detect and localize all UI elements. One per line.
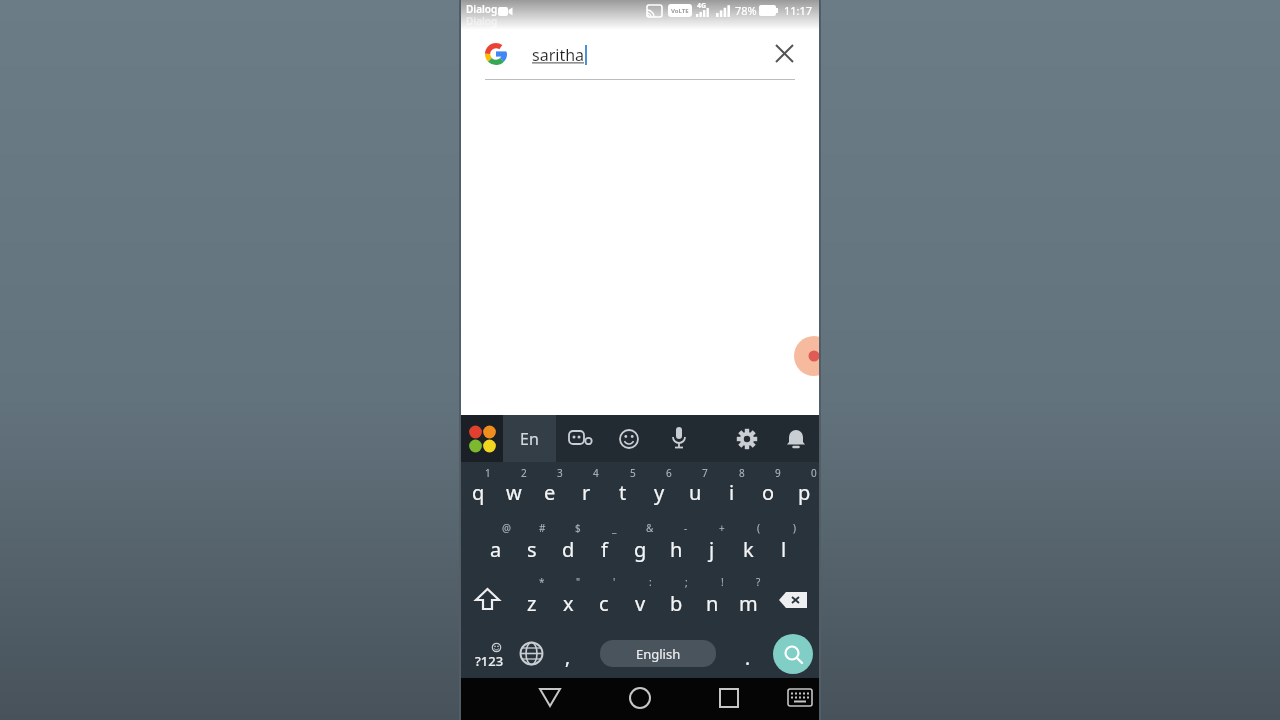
button[interactable]: l [766, 533, 802, 565]
button[interactable]: d [550, 533, 586, 565]
button[interactable]: - [668, 512, 704, 544]
staticText: f [601, 536, 608, 563]
button[interactable]: ( [740, 512, 776, 544]
button[interactable] [788, 689, 812, 706]
button[interactable]: b [658, 587, 694, 619]
button[interactable]: + [704, 512, 740, 544]
staticText: v [635, 590, 646, 617]
button[interactable]: x [550, 587, 586, 619]
button[interactable]: $ [560, 512, 596, 544]
button[interactable]: , [550, 641, 586, 673]
button[interactable]: 4 [578, 457, 614, 489]
staticText: s [527, 536, 537, 563]
staticText: j [709, 536, 715, 563]
button[interactable]: ? [740, 566, 776, 598]
button[interactable]: e [532, 476, 568, 508]
button[interactable]: q [461, 476, 496, 508]
button[interactable] [519, 641, 544, 666]
button[interactable]: r [568, 476, 604, 508]
button[interactable]: ) [776, 512, 812, 544]
button[interactable]: h [658, 533, 694, 565]
button[interactable] [671, 427, 687, 450]
staticText: 3 [557, 466, 563, 480]
staticText: 4 [593, 466, 599, 480]
staticText: 2 [521, 466, 527, 480]
staticText: 4G [697, 1, 707, 11]
button[interactable]: m [730, 587, 766, 619]
button[interactable]: s [514, 533, 550, 565]
button[interactable]: # [524, 512, 560, 544]
button[interactable] [786, 428, 806, 450]
button[interactable] [736, 428, 758, 450]
button[interactable] [629, 687, 651, 709]
staticText: b [670, 590, 683, 617]
button[interactable]: o [750, 476, 786, 508]
button[interactable]: 1 [470, 457, 506, 489]
button[interactable]: : [632, 566, 668, 598]
staticText: m [739, 590, 758, 617]
staticText: 78% [735, 3, 757, 18]
button[interactable]: ?123 [469, 643, 507, 673]
button[interactable]: 6 [651, 457, 687, 489]
button[interactable]: f [586, 533, 622, 565]
button[interactable]: English [600, 640, 716, 667]
staticText: , [565, 644, 571, 670]
button[interactable]: @ [488, 512, 524, 544]
button[interactable]: 7 [687, 457, 723, 489]
button[interactable]: w [496, 476, 532, 508]
button[interactable]: z [514, 587, 550, 619]
button[interactable]: n [694, 587, 730, 619]
staticText: + [719, 521, 725, 535]
button[interactable]: . [730, 642, 766, 674]
button[interactable] [569, 429, 593, 447]
button[interactable]: v [622, 587, 658, 619]
button[interactable] [776, 45, 793, 62]
button[interactable]: _ [596, 512, 632, 544]
button[interactable] [461, 415, 503, 462]
button[interactable]: 0 [796, 457, 819, 489]
button[interactable]: j [694, 533, 730, 565]
button[interactable]: & [632, 512, 668, 544]
staticText: o [762, 479, 775, 506]
button[interactable]: En [503, 415, 556, 462]
button[interactable]: 9 [760, 457, 796, 489]
button[interactable]: k [730, 533, 766, 565]
button[interactable]: 5 [615, 457, 651, 489]
button[interactable]: 3 [542, 457, 578, 489]
staticText: h [670, 536, 683, 563]
button[interactable]: t [605, 476, 641, 508]
staticText: @ [502, 521, 511, 535]
staticText: 0 [811, 466, 817, 480]
staticText: 9 [775, 466, 781, 480]
button[interactable]: ' [596, 566, 632, 598]
button[interactable]: 8 [724, 457, 760, 489]
staticText: Dialog [466, 14, 498, 28]
staticText: e [544, 479, 556, 506]
staticText: ' [613, 575, 616, 589]
button[interactable]: ! [704, 566, 740, 598]
button[interactable]: i [714, 476, 750, 508]
button[interactable] [475, 589, 500, 611]
staticText: . [745, 645, 751, 671]
button[interactable] [619, 429, 639, 449]
staticText: : [649, 575, 652, 589]
button[interactable] [779, 592, 807, 609]
button[interactable]: 2 [506, 457, 542, 489]
button[interactable]: saritha [532, 44, 587, 66]
staticText: 5 [630, 466, 636, 480]
button[interactable]: u [677, 476, 713, 508]
button[interactable]: a [478, 533, 514, 565]
button[interactable] [719, 688, 739, 708]
staticText: q [472, 479, 485, 506]
staticText: $ [575, 521, 581, 535]
button[interactable]: y [641, 476, 677, 508]
button[interactable] [773, 634, 813, 674]
button[interactable]: ; [668, 566, 704, 598]
button[interactable]: p [786, 476, 819, 508]
button[interactable]: " [560, 566, 596, 598]
staticText: _ [612, 521, 617, 535]
button[interactable]: c [586, 587, 622, 619]
button[interactable]: * [524, 566, 560, 598]
button[interactable] [539, 688, 561, 707]
button[interactable]: g [622, 533, 658, 565]
